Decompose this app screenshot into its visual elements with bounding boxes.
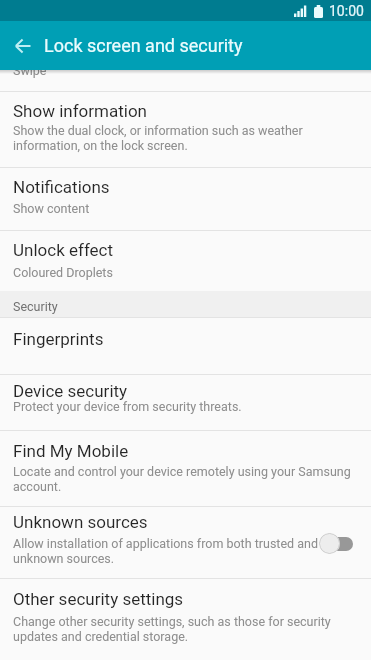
button[interactable]: Other security settings	[0, 579, 371, 660]
staticText: Find My Mobile	[13, 441, 129, 461]
button[interactable]: Unlock effect	[0, 231, 371, 291]
button[interactable]: Fingerprints	[0, 318, 371, 374]
staticText: Other security settings	[13, 589, 184, 609]
staticText: Device security	[13, 381, 128, 401]
staticText: Coloured Droplets	[13, 265, 113, 280]
staticText: Show content	[13, 201, 90, 216]
staticText: Lock screen and security	[44, 35, 243, 56]
button[interactable]: Notifications	[0, 168, 371, 230]
button[interactable]: Show information	[0, 92, 371, 167]
staticText: Show information	[13, 101, 147, 121]
staticText: Unknown sources	[13, 512, 148, 532]
button[interactable]: Device security	[0, 375, 371, 430]
button[interactable]: Swipe	[0, 62, 371, 91]
staticText: Locate and control your device remotely …	[13, 464, 351, 494]
button[interactable]: Find My Mobile	[0, 431, 371, 506]
staticText: Allow installation of applications from …	[13, 536, 318, 566]
staticText: Notifications	[13, 177, 110, 197]
staticText: Unlock effect	[13, 240, 114, 260]
staticText: Security	[13, 299, 58, 314]
staticText: Protect your device from security threat…	[13, 399, 242, 414]
button[interactable]	[6, 29, 40, 63]
staticText: Fingerprints	[13, 329, 104, 349]
staticText: 10:00	[329, 3, 364, 19]
button[interactable]: Unknown sources	[0, 507, 371, 578]
staticText: Show the dual clock, or information such…	[13, 123, 303, 153]
staticText: Swipe	[13, 63, 47, 78]
staticText: Change other security settings, such as …	[13, 614, 331, 644]
